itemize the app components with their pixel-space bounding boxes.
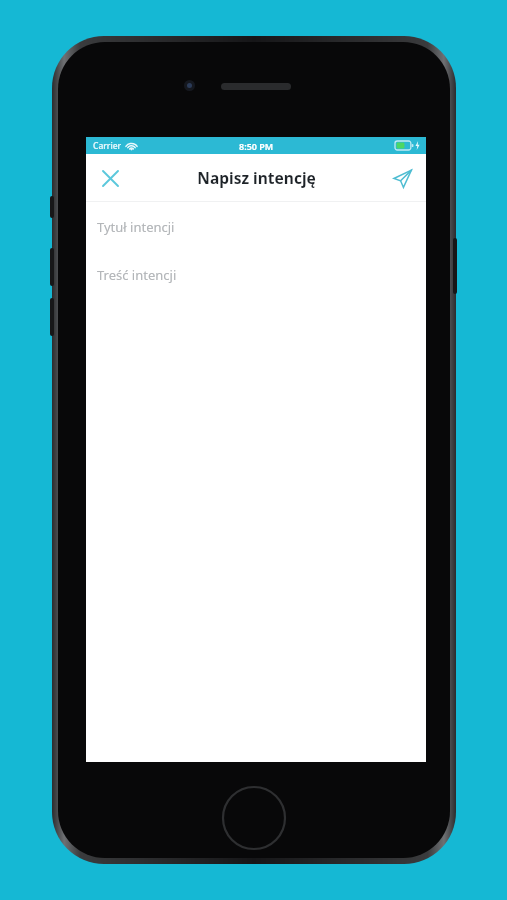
staticText: 8:50 PM [239, 140, 274, 152]
staticText: Treść intencji [97, 266, 177, 284]
button[interactable]: Zamknij [92, 160, 128, 196]
staticText: Tytuł intencji [97, 218, 175, 236]
button[interactable]: Wyślij [384, 160, 420, 196]
button[interactable]: Tytuł intencji [86, 202, 426, 252]
staticText: Napisz intencję [197, 167, 316, 188]
staticText: Carrier [93, 140, 122, 152]
